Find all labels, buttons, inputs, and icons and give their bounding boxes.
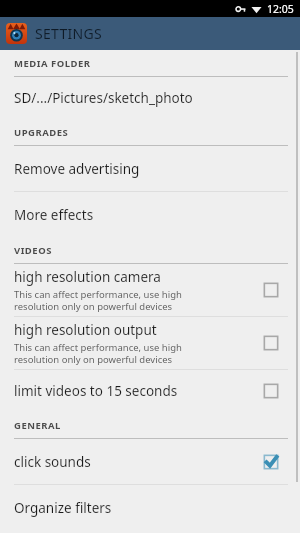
staticText: 12:05 xyxy=(267,2,294,16)
button[interactable]: Organize filters xyxy=(0,485,300,530)
staticText: high resolution output xyxy=(14,321,157,339)
staticText: Organize filters xyxy=(14,499,112,517)
other: Unchecked xyxy=(262,281,280,299)
button[interactable]: limit videos to 15 seconds xyxy=(0,370,300,412)
staticText: GENERAL xyxy=(14,419,61,432)
staticText: This can affect performance, use high re… xyxy=(14,288,182,313)
staticText: limit videos to 15 seconds xyxy=(14,382,178,400)
button[interactable]: high resolution output xyxy=(0,317,300,370)
staticText: click sounds xyxy=(14,453,91,471)
button[interactable]: SD/.../Pictures/sketch_photo xyxy=(0,77,300,119)
staticText: VIDEOS xyxy=(14,244,52,257)
button[interactable]: App icon xyxy=(6,23,27,44)
staticText: UPGRADES xyxy=(14,126,69,139)
staticText: SD/.../Pictures/sketch_photo xyxy=(14,89,193,107)
button[interactable]: Remove advertising xyxy=(0,146,300,192)
button[interactable]: More effects xyxy=(0,192,300,237)
button[interactable]: high resolution camera xyxy=(0,264,300,317)
staticText: MEDIA FOLDER xyxy=(14,57,91,70)
button[interactable]: click sounds xyxy=(0,439,300,485)
staticText: More effects xyxy=(14,206,94,224)
staticText: SETTINGS xyxy=(35,24,102,43)
other: Unchecked xyxy=(262,382,280,400)
staticText: high resolution camera xyxy=(14,268,161,286)
staticText: Remove advertising xyxy=(14,160,140,178)
other: Checked xyxy=(262,453,280,471)
other: Unchecked xyxy=(262,334,280,352)
staticText: This can affect performance, use high re… xyxy=(14,341,182,366)
